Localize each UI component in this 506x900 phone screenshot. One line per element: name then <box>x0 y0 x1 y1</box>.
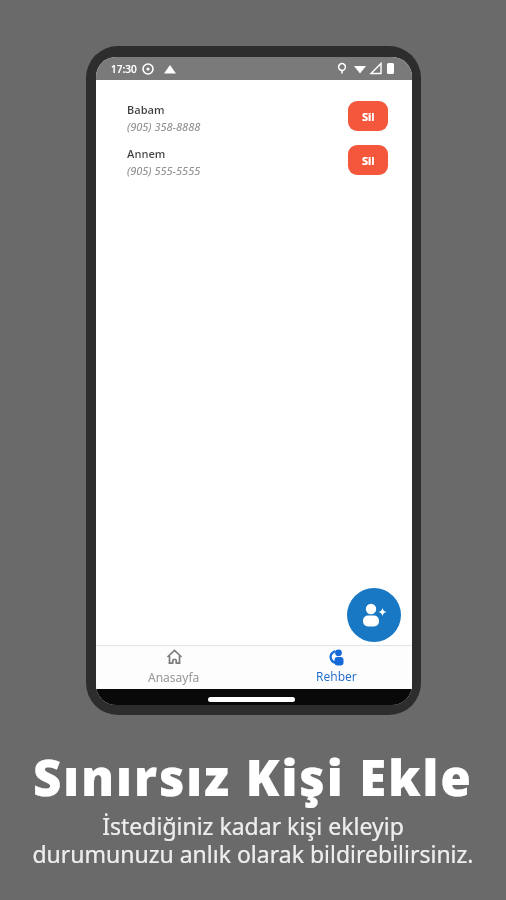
button[interactable]: Sil <box>348 101 388 131</box>
staticText: Sınırsız Kişi Ekle <box>33 744 473 811</box>
button[interactable]: Rehber <box>296 649 376 689</box>
button[interactable]: Anasayfa <box>134 649 214 689</box>
staticText: Anasayfa <box>148 669 200 685</box>
staticText: Rehber <box>316 668 357 684</box>
button[interactable] <box>347 588 401 642</box>
staticText: 17:30 <box>111 62 137 76</box>
staticText: İstediğiniz kadar kişi ekleyip durumunuz… <box>32 810 474 869</box>
staticText: Annem <box>127 146 166 161</box>
button[interactable]: Sil <box>348 145 388 175</box>
staticText: (905) 358-8888 <box>127 119 201 134</box>
staticText: (905) 555-5555 <box>127 163 201 178</box>
staticText: Sil <box>362 153 375 168</box>
staticText: Sil <box>362 109 375 124</box>
staticText: Babam <box>127 102 165 117</box>
